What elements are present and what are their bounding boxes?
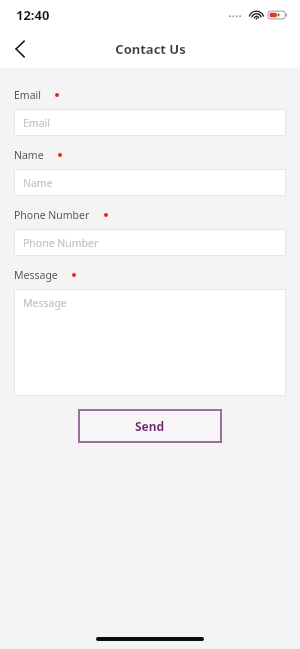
button[interactable]: Name	[14, 169, 286, 196]
staticText: Email	[14, 88, 41, 102]
button[interactable]: Email	[14, 109, 286, 136]
staticText: Send	[135, 418, 165, 434]
staticText: Phone Number	[14, 208, 90, 222]
staticText: Message	[23, 296, 67, 310]
staticText: 12:40	[16, 6, 50, 24]
staticText: Message	[14, 268, 58, 282]
staticText: Phone Number	[23, 236, 99, 250]
button[interactable]: Phone Number	[14, 229, 286, 256]
staticText: Email	[23, 116, 50, 130]
button[interactable]: Back	[0, 30, 40, 68]
staticText: Name	[23, 176, 53, 190]
staticText: Name	[14, 148, 44, 162]
button[interactable]: Send	[78, 409, 222, 443]
button[interactable]: Message	[14, 289, 286, 396]
staticText: Contact Us	[115, 40, 186, 58]
